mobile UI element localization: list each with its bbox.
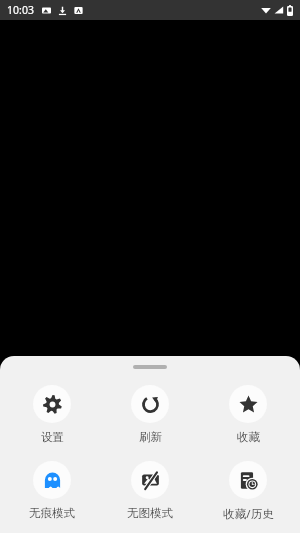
button[interactable]: No image mode: [104, 459, 196, 522]
button[interactable]: Settings: [6, 383, 98, 446]
button[interactable]: Favorites and history: [202, 459, 294, 524]
staticText: 收藏: [237, 430, 260, 444]
staticText: 刷新: [139, 430, 162, 444]
staticText: 10:03: [7, 3, 34, 17]
button[interactable]: Favorite: [202, 383, 294, 446]
button[interactable]: Refresh: [104, 383, 196, 446]
staticText: 无图模式: [127, 506, 173, 520]
staticText: 无痕模式: [29, 506, 75, 520]
button[interactable]: Incognito mode: [6, 459, 98, 522]
staticText: 设置: [41, 430, 64, 444]
staticText: 收藏/历史: [223, 506, 274, 522]
